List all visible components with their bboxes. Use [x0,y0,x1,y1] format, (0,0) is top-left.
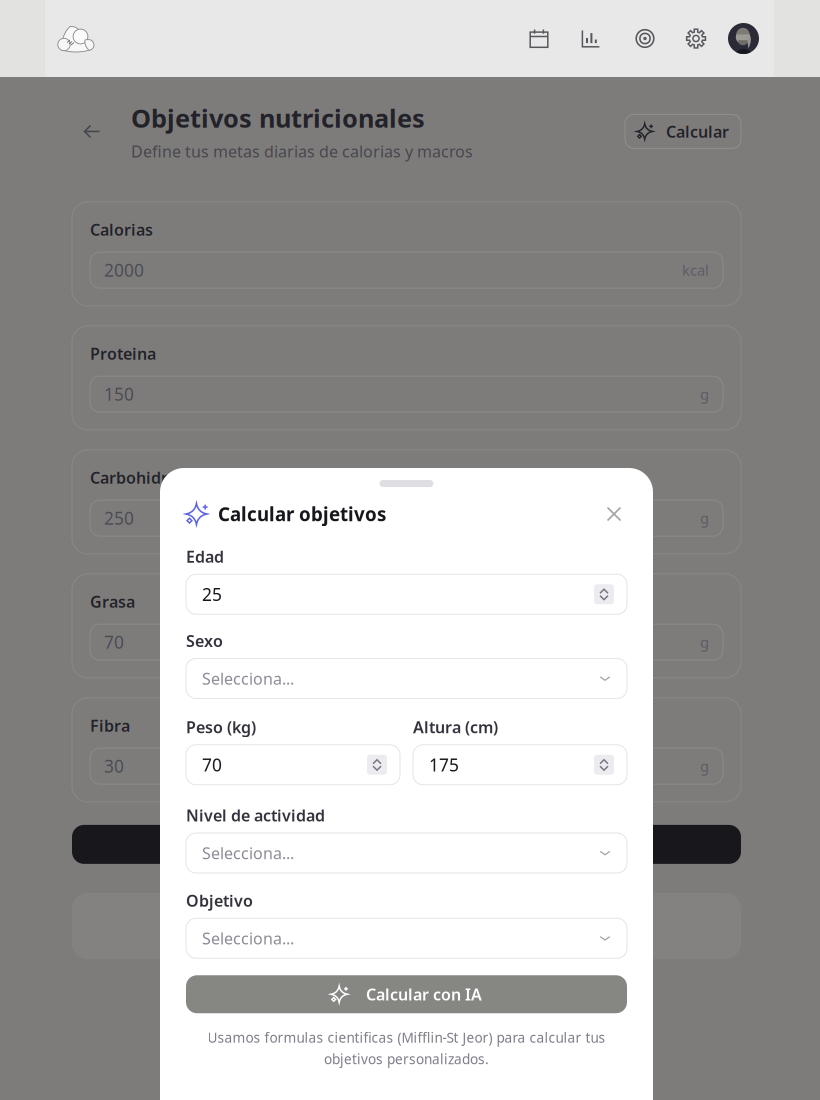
staticText: 70 [202,753,222,776]
button[interactable]: Goals [630,23,660,53]
button[interactable]: Home [52,18,101,58]
staticText: 150 [104,383,134,406]
staticText: Carbohidratos [90,467,201,488]
staticText: Selecciona... [202,928,294,949]
button[interactable]: Calendar [524,23,554,53]
staticText: Define tus metas diarias de calorias y m… [131,141,473,162]
staticText: Fibra [90,715,130,736]
staticText: 30 [104,755,124,778]
staticText: Objetivos nutricionales [131,101,425,135]
staticText: Proteina [90,343,156,364]
staticText: g [700,384,709,404]
staticText: Edad [186,546,224,567]
button[interactable]: Calcular [625,114,741,148]
button[interactable]: Profile [728,23,759,54]
staticText: Usamos formulas cientificas (Mifflin-St … [207,1028,605,1047]
staticText: Selecciona... [202,842,294,864]
staticText: g [700,632,709,652]
button[interactable]: Selecciona... [186,833,627,873]
staticText: Sexo [186,630,223,651]
staticText: kcal [682,260,709,280]
staticText: 2000 [104,259,144,282]
staticText: 25 [202,583,222,606]
button[interactable]: Selecciona... [186,658,627,698]
staticText: Nivel de actividad [186,805,325,826]
staticText: 250 [104,507,134,530]
staticText: Calcular con IA [366,984,482,1005]
button[interactable]: Statistics [576,23,606,53]
staticText: Altura (cm) [413,716,498,738]
button[interactable]: Settings [681,23,711,53]
button[interactable]: Selecciona... [186,918,627,958]
staticText: Objetivo [186,890,253,911]
staticText: Peso (kg) [186,716,256,738]
staticText: Calorias [90,219,153,240]
staticText: objetivos personalizados. [324,1050,489,1068]
staticText: 70 [104,631,124,654]
staticText: g [700,756,709,776]
button[interactable]: Calcular con IA [186,975,627,1013]
staticText: g [700,508,709,528]
staticText: Calcular [666,121,729,142]
button[interactable]: Back [74,113,110,149]
button[interactable]: Close [601,501,627,527]
staticText: 175 [429,753,459,776]
staticText: Calcular objetivos [218,502,386,526]
staticText: Grasa [90,591,135,612]
staticText: Selecciona... [202,668,294,689]
